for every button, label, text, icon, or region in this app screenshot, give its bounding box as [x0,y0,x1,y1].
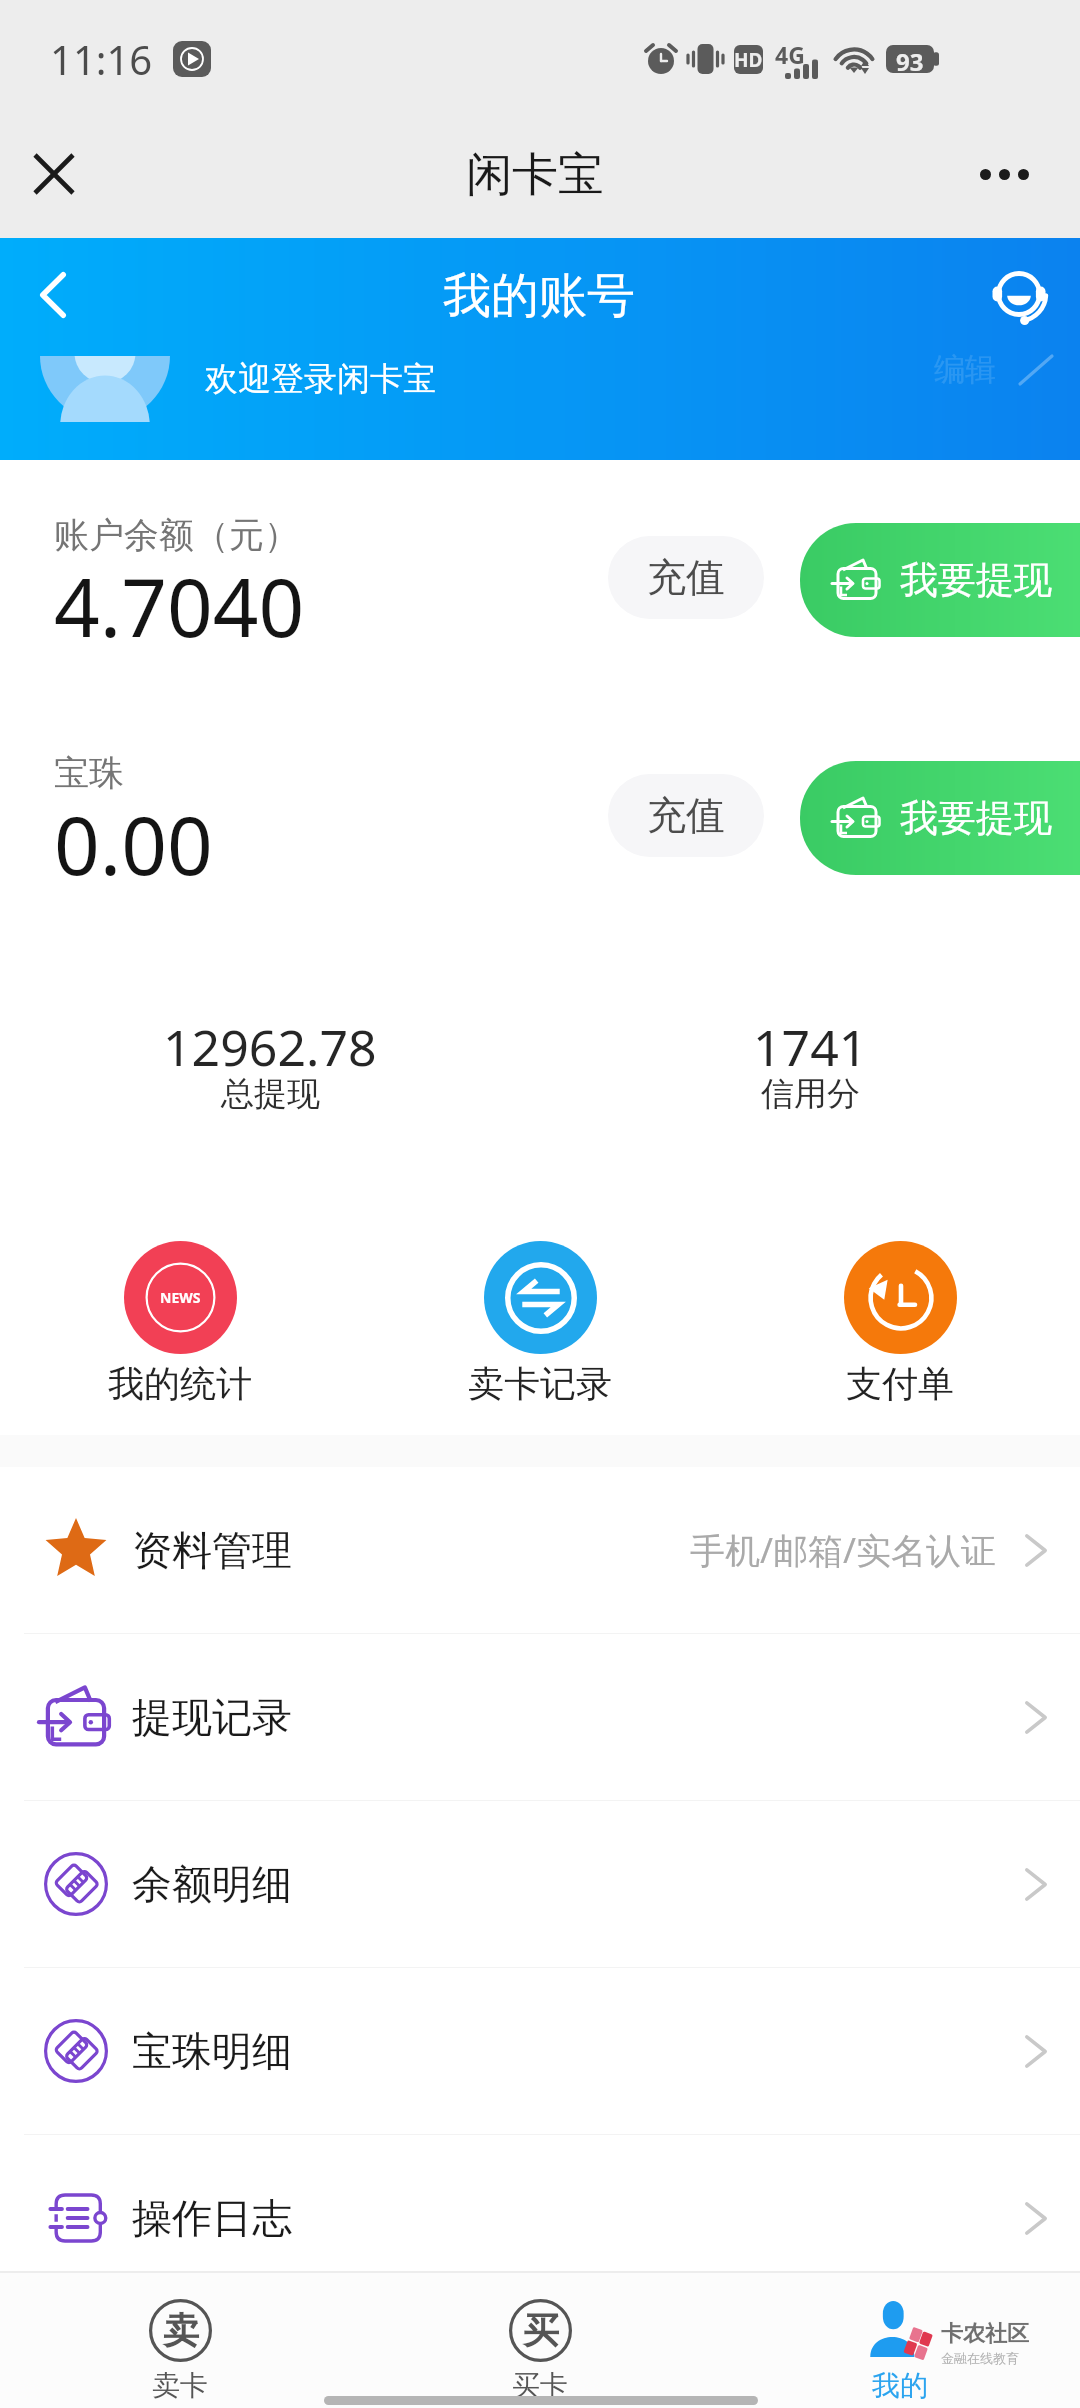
button[interactable]: 我要提现 [800,523,1080,637]
staticText: 卖卡 [152,2368,208,2403]
staticText: 我要提现 [900,556,1052,604]
staticText: 我的账号 [443,266,635,326]
staticText: 提现记录 [132,1692,292,1742]
button[interactable]: 资料管理 [0,1467,1080,1633]
staticText: 卖 [163,2308,199,2353]
staticText: 买 [523,2308,559,2353]
staticText: 闲卡宝 [466,146,604,204]
staticText: 资料管理 [132,1525,292,1575]
staticText: 手机/邮箱/实名认证 [690,1526,997,1574]
staticText: 4.7040 [54,551,305,660]
staticText: 宝珠 [54,751,124,795]
staticText: 信用分 [761,1073,860,1115]
button[interactable]: 卖卡记录 [360,1241,720,1441]
staticText: 卖卡记录 [468,1361,612,1406]
staticText: 11:16 [50,32,153,86]
staticText: 宝珠明细 [132,2026,292,2076]
button[interactable]: 充值 [608,536,764,619]
button[interactable]: 卖 [0,2271,360,2408]
button[interactable]: 我的 [720,2271,1080,2408]
staticText: 金融在线教育 [941,2350,1019,2366]
button[interactable]: 1741 [540,993,1080,1143]
staticText: 操作日志 [132,2193,292,2243]
staticText: 93 [896,45,924,73]
staticText: HD [734,47,763,73]
button[interactable]: 12962.78 [0,993,540,1143]
staticText: 支付单 [846,1361,954,1406]
button[interactable]: 提现记录 [0,1634,1080,1800]
staticText: 总提现 [221,1073,320,1115]
staticText: 充值 [647,791,725,840]
button[interactable]: 我要提现 [800,761,1080,875]
staticText: 账户余额（元） [54,513,299,557]
button[interactable]: Edit profile [934,350,1054,389]
staticText: 欢迎登录闲卡宝 [205,358,436,400]
staticText: 余额明细 [132,1859,292,1909]
staticText: 卡农社区 [941,2320,1029,2348]
button[interactable]: Customer service [979,257,1059,337]
staticText: 充值 [647,553,725,602]
button[interactable]: 买 [360,2271,720,2408]
staticText: 我的 [872,2368,928,2403]
button[interactable]: 操作日志 [0,2135,1080,2271]
button[interactable]: 支付单 [720,1241,1080,1441]
staticText: 4G [775,39,805,70]
button[interactable]: NEWS [0,1241,360,1441]
button[interactable]: 充值 [608,774,764,857]
staticText: 买卡 [512,2368,568,2403]
button[interactable]: Close [11,131,97,217]
staticText: 1741 [753,1013,868,1073]
button[interactable]: 余额明细 [0,1801,1080,1967]
staticText: 12962.78 [163,1013,377,1073]
button[interactable]: Back [13,255,93,335]
staticText: 我要提现 [900,794,1052,842]
staticText: 编辑 [934,350,996,389]
staticText: NEWS [160,1288,201,1307]
button[interactable]: More options [961,131,1047,217]
button[interactable]: 宝珠明细 [0,1968,1080,2134]
staticText: 我的统计 [108,1361,252,1406]
staticText: 0.00 [54,789,213,898]
